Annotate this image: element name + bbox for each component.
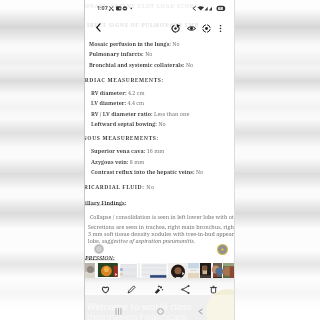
button[interactable]: Photo	[213, 263, 222, 279]
button[interactable]: Photo	[140, 263, 168, 279]
button[interactable]: Photo	[223, 263, 234, 279]
button[interactable]: Back	[192, 303, 208, 319]
staticText: Pulmonary infarcts: No	[89, 50, 153, 57]
staticText: RV / LV diameter ratio: Less than one	[91, 110, 190, 117]
staticText: Leftward septal bowing: No	[91, 120, 166, 127]
button[interactable]: Magic eraser	[149, 280, 167, 298]
staticText: Secretions are seen in trachea, right ma…	[88, 223, 234, 244]
button[interactable]: Rotate	[168, 21, 182, 35]
staticText: Bronchial and systemic collaterals: No	[89, 61, 194, 68]
staticText: 68	[218, 6, 223, 12]
button[interactable]: Photo	[98, 263, 119, 279]
button[interactable]: Edit	[122, 280, 140, 298]
staticText: VENOUS MEASUREMENTS:	[85, 134, 159, 141]
staticText: Contrast reflux into the hepatic veins: …	[91, 168, 204, 175]
staticText: Welcome to world class	[87, 300, 192, 313]
staticText: 1:07	[97, 4, 108, 11]
button[interactable]: Lens	[199, 21, 213, 35]
staticText: PRESSION:	[85, 254, 115, 261]
button[interactable]: Photo	[200, 263, 211, 279]
button[interactable]: Back	[91, 20, 106, 35]
staticText: Superior vena cava: 16 mm	[91, 147, 165, 154]
staticText: RICARDIAL FLUID: No	[85, 183, 155, 190]
staticText: illary Findings:	[85, 199, 127, 206]
button[interactable]: Photo	[169, 263, 187, 279]
button[interactable]: Preview	[184, 21, 198, 35]
staticText: IRECT SIGNS OF PULMONARY EMB	[87, 21, 199, 28]
staticText: CARDIAC MEASUREMENTS:	[85, 76, 164, 83]
staticText: MONARY ARTERY CLOT LOAD SCORE:	[85, 2, 201, 9]
staticText: Mosaic perfusion in the lungs: No	[89, 40, 180, 47]
staticText: destination healthcare	[87, 310, 188, 320]
button[interactable]: Delete	[204, 280, 222, 298]
staticText: Collapse / consolidation is seen in left…	[90, 213, 234, 220]
button[interactable]: Photo	[119, 263, 138, 279]
button[interactable]: Recents	[110, 303, 126, 319]
button[interactable]: Favorite	[96, 280, 114, 298]
button[interactable]: Home	[152, 303, 168, 319]
button[interactable]: Photo	[188, 263, 199, 279]
button[interactable]: More options	[213, 21, 227, 35]
staticText: LV diameter: 4.4 cm	[91, 99, 145, 106]
button[interactable]: Photo	[85, 263, 95, 279]
button[interactable]: Share	[176, 280, 194, 298]
staticText: RV diameter: 4.2 cm	[91, 89, 145, 96]
staticText: Azygous vein: 8 mm	[91, 158, 145, 165]
